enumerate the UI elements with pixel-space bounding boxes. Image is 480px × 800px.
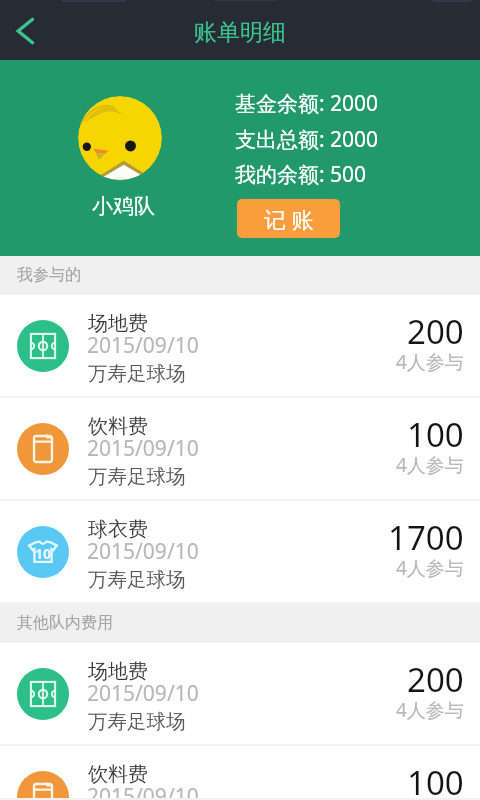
staticText: 小鸡队 bbox=[92, 193, 155, 219]
staticText: 记 账 bbox=[264, 204, 314, 234]
button[interactable]: Back bbox=[2, 6, 54, 58]
button[interactable]: 饮料费 bbox=[0, 746, 480, 800]
staticText: 2015/09/10 bbox=[87, 679, 199, 708]
staticText: 饮料费 bbox=[88, 762, 148, 787]
staticText: 万寿足球场 bbox=[88, 709, 186, 734]
staticText: 万寿足球场 bbox=[88, 464, 186, 489]
staticText: 4人参与 bbox=[396, 555, 464, 581]
button[interactable]: 场地费 bbox=[0, 295, 480, 398]
staticText: 2015/09/10 bbox=[87, 331, 199, 360]
button[interactable]: 场地费 bbox=[0, 643, 480, 746]
staticText: 200 bbox=[407, 657, 464, 702]
staticText: 万寿足球场 bbox=[88, 361, 186, 386]
button[interactable]: 10 bbox=[0, 501, 480, 604]
staticText: 1700 bbox=[388, 515, 464, 560]
staticText: 100 bbox=[407, 412, 464, 457]
staticText: 4人参与 bbox=[396, 349, 464, 375]
staticText: 支出总额: 2000 bbox=[235, 125, 379, 154]
staticText: 其他队内费用 bbox=[17, 613, 113, 633]
staticText: 2015/09/10 bbox=[87, 434, 199, 463]
staticText: 饮料费 bbox=[88, 414, 148, 439]
staticText: 我参与的 bbox=[17, 265, 81, 285]
staticText: 2015/09/10 bbox=[87, 782, 199, 800]
button[interactable]: 记 账 bbox=[237, 199, 340, 238]
staticText: 2015/09/10 bbox=[87, 537, 199, 566]
staticText: 4人参与 bbox=[396, 697, 464, 723]
staticText: 球衣费 bbox=[88, 517, 148, 542]
staticText: 4人参与 bbox=[396, 452, 464, 478]
staticText: 场地费 bbox=[88, 659, 148, 684]
staticText: 场地费 bbox=[88, 311, 148, 336]
staticText: 万寿足球场 bbox=[88, 567, 186, 592]
button[interactable]: 饮料费 bbox=[0, 398, 480, 501]
staticText: 我的余额: 500 bbox=[235, 160, 367, 189]
staticText: 账单明细 bbox=[194, 18, 286, 47]
staticText: 100 bbox=[407, 760, 464, 800]
staticText: 10 bbox=[35, 544, 52, 563]
staticText: 基金余额: 2000 bbox=[235, 89, 379, 118]
staticText: 200 bbox=[407, 309, 464, 354]
